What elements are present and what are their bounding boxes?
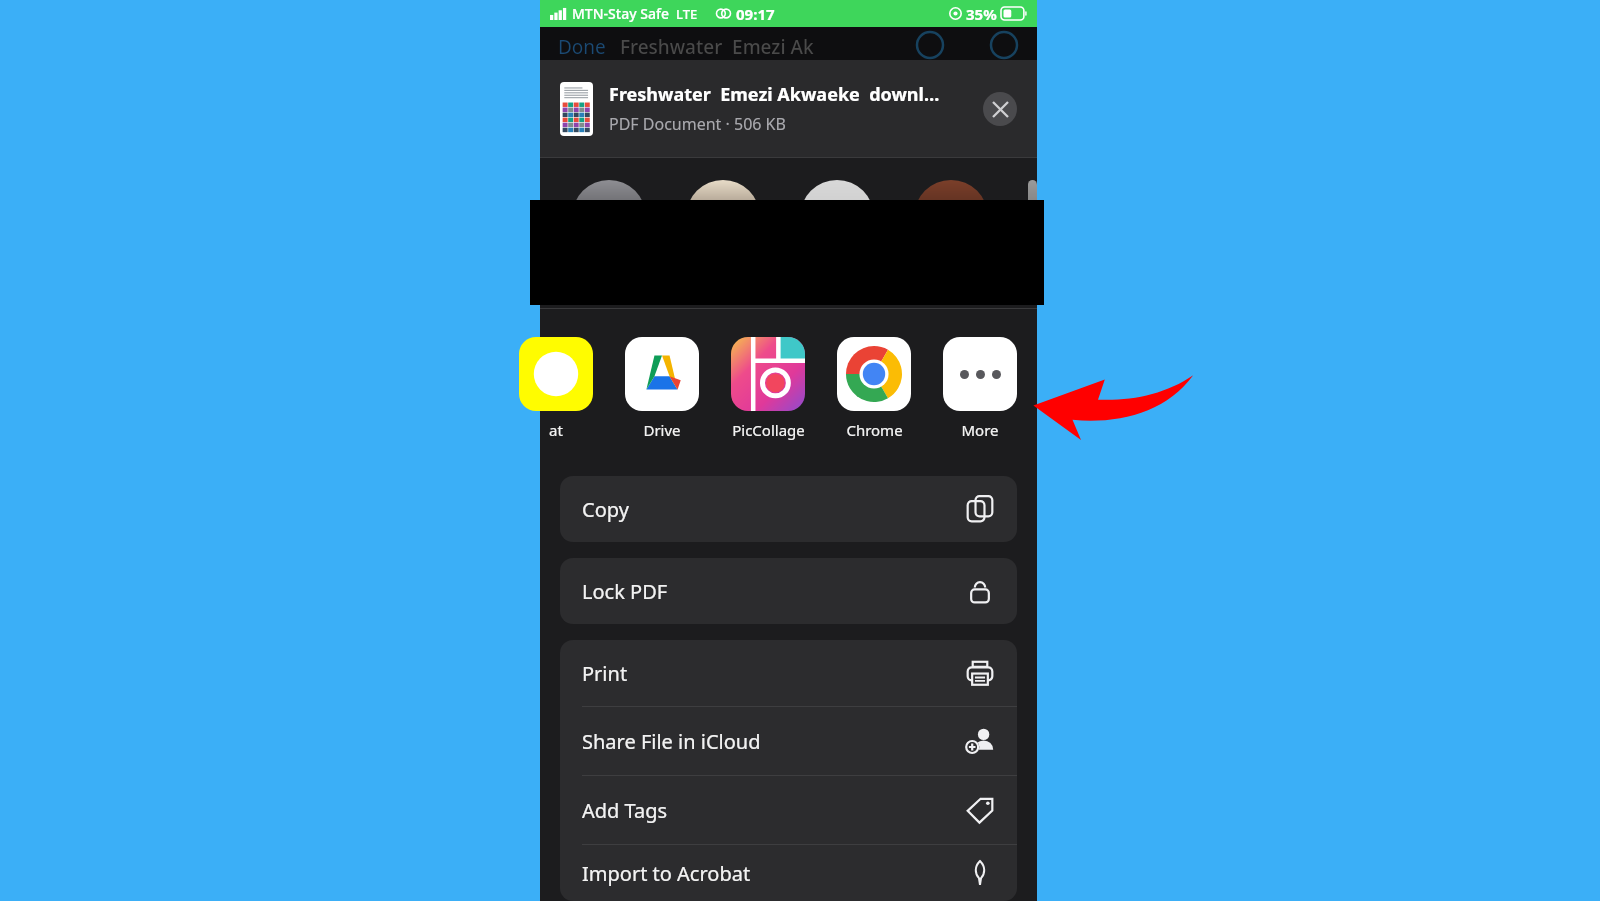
button[interactable]: Drive (616, 337, 708, 440)
staticText: Chrome (846, 420, 903, 440)
staticText: MTN-Stay Safe (572, 4, 669, 23)
button[interactable]: at (510, 337, 602, 440)
button[interactable]: Lock PDF (560, 558, 1017, 624)
button[interactable]: Close (983, 92, 1017, 126)
staticText: 09:17 (736, 4, 775, 24)
button[interactable]: Contact (914, 180, 988, 254)
button[interactable]: Import to Acrobat (560, 845, 1017, 901)
staticText: Freshwater Emezi Ak (620, 34, 814, 60)
staticText: LTE (676, 5, 698, 23)
button[interactable]: Print (560, 640, 1017, 706)
staticText: Done (558, 34, 606, 60)
staticText: PicCollage (732, 420, 805, 440)
staticText: Lock PDF (582, 578, 668, 605)
staticText: More (961, 420, 999, 440)
staticText: PDF Document · 506 KB (609, 113, 786, 135)
staticText: 35% (966, 4, 997, 24)
staticText: Print (582, 660, 628, 687)
button[interactable]: PicCollage (722, 337, 814, 440)
button[interactable]: Freshwater Emezi Akwaeke downl… (540, 60, 1037, 157)
button[interactable]: Copy (560, 476, 1017, 542)
staticText: Add Tags (582, 797, 668, 824)
staticText: Freshwater Emezi Akwaeke downl… (609, 82, 940, 107)
button[interactable]: Chrome (828, 337, 920, 440)
button[interactable]: Contact (800, 180, 874, 254)
button[interactable]: Add Tags (560, 776, 1017, 844)
staticText: Drive (643, 420, 681, 440)
staticText: Share File in iCloud (582, 728, 761, 755)
button[interactable]: Share File in iCloud (560, 707, 1017, 775)
staticText: Copy (582, 496, 629, 523)
staticText: at (549, 420, 563, 440)
button[interactable]: Contact (1028, 180, 1037, 254)
button[interactable]: Contact (686, 180, 760, 254)
staticText: Import to Acrobat (582, 860, 751, 887)
button[interactable]: More (934, 337, 1026, 440)
button[interactable]: Contact (572, 180, 646, 254)
